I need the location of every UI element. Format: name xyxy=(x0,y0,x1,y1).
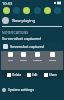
button[interactable]: Gmail xyxy=(49,52,56,61)
button[interactable]: Edit xyxy=(27,73,38,77)
button[interactable]: Quick setting xyxy=(13,7,20,14)
button[interactable]: Delete xyxy=(7,73,22,77)
staticText: Play xyxy=(8,58,13,61)
staticText: Screenshot captured xyxy=(2,36,41,41)
button[interactable]: Share xyxy=(44,73,58,77)
button[interactable]: Photos xyxy=(33,52,42,61)
staticText: System settings xyxy=(8,87,34,92)
button[interactable]: Quick setting xyxy=(3,7,10,14)
button[interactable]: Quick setting xyxy=(54,7,61,14)
staticText: NOTIFICATIONS xyxy=(2,30,29,35)
staticText: Drive xyxy=(20,58,27,61)
staticText: Screenshot captured xyxy=(10,44,44,49)
staticText: Share xyxy=(49,73,58,77)
button[interactable]: Play xyxy=(8,52,13,61)
staticText: Edit xyxy=(32,73,38,77)
button[interactable]: Quick setting xyxy=(23,7,30,14)
staticText: 10:53 xyxy=(2,1,13,6)
button[interactable]: Quick setting xyxy=(34,7,41,14)
staticText: Photos xyxy=(33,58,42,61)
button[interactable]: Quick setting xyxy=(44,7,51,14)
staticText: Delete xyxy=(12,73,22,77)
staticText: Now playing xyxy=(12,18,36,23)
staticText: Gmail xyxy=(49,58,56,61)
button[interactable]: Drive xyxy=(20,52,27,61)
